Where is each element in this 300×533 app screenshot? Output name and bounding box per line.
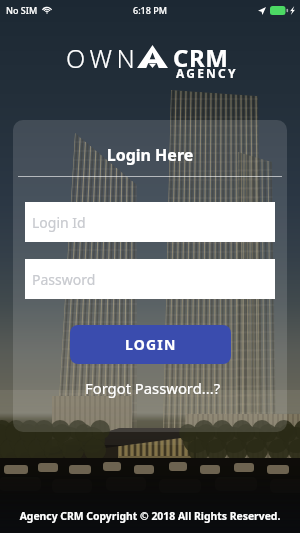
button[interactable]: Password <box>25 259 275 299</box>
staticText: CRM <box>173 41 229 74</box>
staticText: AGENCY <box>176 65 238 81</box>
staticText: No SIM <box>6 4 38 16</box>
staticText: LOGIN <box>125 335 177 354</box>
button[interactable]: LOGIN <box>70 325 231 364</box>
staticText: Password <box>32 270 96 289</box>
button[interactable]: Login Id <box>25 202 275 242</box>
staticText: Login Id <box>32 213 86 232</box>
button[interactable]: Forgot Password...? <box>16 375 287 401</box>
staticText: OWN <box>66 41 140 75</box>
staticText: Agency CRM Copyright © 2018 All Rights R… <box>0 509 300 523</box>
staticText: Forgot Password...? <box>85 378 221 398</box>
staticText: Login Here <box>13 144 287 166</box>
staticText: 6:18 PM <box>133 4 167 16</box>
